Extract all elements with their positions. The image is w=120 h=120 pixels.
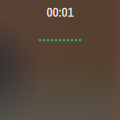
staticText: 00:01 xyxy=(46,3,73,21)
